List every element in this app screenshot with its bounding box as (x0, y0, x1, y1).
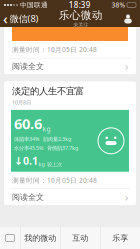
staticText: 10月8日 (12, 99, 31, 106)
staticText: 18:39 (69, 0, 91, 10)
staticText: 阅读全文 (12, 192, 44, 202)
staticText: 阅读全文 (12, 61, 44, 71)
staticText: ↓0.1 (14, 153, 38, 168)
staticText: 微信(8) (9, 12, 38, 25)
staticText: 淡定的人生不宜富 (12, 85, 84, 97)
staticText: 测量时间：10月05日 20:48 (12, 176, 97, 185)
staticText: 互动 (72, 233, 88, 243)
button[interactable]: 我的微动 (20, 227, 60, 249)
button[interactable]: 互动 (60, 227, 100, 249)
staticText: 肌肉量2.3kg (43, 135, 71, 142)
button[interactable]: 淡定的人生不宜富 (4, 81, 136, 205)
staticText: 中国联通 (20, 1, 48, 9)
staticText: 骨骼肌37.7kg (47, 144, 78, 152)
staticText: kg (38, 161, 44, 168)
staticText: 60.6 (14, 114, 42, 133)
staticText: ‹ (3, 9, 8, 28)
button[interactable]: 测量时间：10月05日 20:48 (4, 27, 136, 74)
staticText: › (125, 59, 128, 73)
staticText: 38% (111, 1, 125, 9)
button[interactable]: Keyboard (0, 227, 20, 249)
staticText: 体脂率34% (14, 135, 39, 142)
staticText: 水分率45.5% (14, 144, 43, 152)
button[interactable]: Profile (120, 10, 136, 26)
staticText: kg (42, 124, 50, 133)
staticText: 乐享 (112, 233, 128, 243)
staticText: 未关注 (73, 22, 88, 28)
staticText: 测量时间：10月05日 20:48 (12, 45, 97, 54)
staticText: 较上次 (47, 161, 62, 168)
button[interactable]: 乐享 (100, 227, 140, 249)
staticText: 我的微动 (24, 233, 56, 243)
staticText: 乐心微动 (59, 9, 103, 22)
button[interactable]: ‹ (0, 9, 41, 27)
staticText: › (125, 190, 128, 204)
